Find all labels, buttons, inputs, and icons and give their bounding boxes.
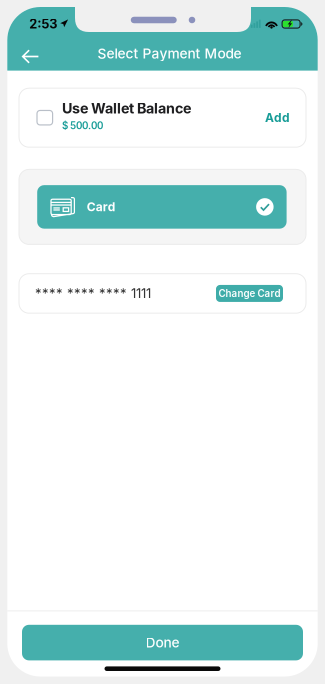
button[interactable]: Change Card: [216, 285, 306, 302]
staticText: 2:53: [29, 16, 57, 32]
staticText: Use Wallet Balance: [62, 100, 191, 117]
staticText: Change Card: [218, 288, 280, 299]
staticText: Select Payment Mode: [97, 45, 241, 62]
button[interactable]: Back: [7, 40, 51, 73]
staticText: $ 500.00: [62, 120, 103, 132]
staticText: Card: [87, 200, 116, 214]
button[interactable]: Card: [37, 185, 287, 229]
staticText: Add: [265, 110, 290, 125]
button[interactable]: Use Wallet Balance: [19, 98, 62, 137]
button[interactable]: Add: [257, 101, 298, 134]
staticText: Done: [145, 634, 179, 651]
button[interactable]: Done: [22, 625, 303, 660]
staticText: **** **** **** 1111: [35, 285, 151, 301]
